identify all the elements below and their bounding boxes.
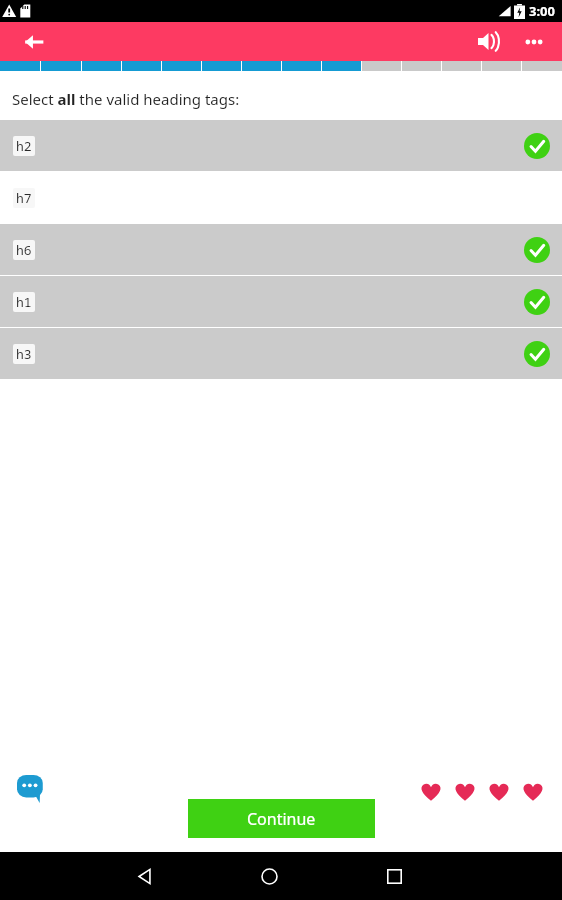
staticText: h3 bbox=[16, 345, 32, 363]
button[interactable]: Back bbox=[12, 22, 56, 61]
button[interactable]: Recent apps bbox=[363, 852, 425, 900]
staticText: Continue bbox=[247, 808, 316, 830]
button[interactable]: h2 bbox=[0, 120, 562, 171]
button[interactable]: h3 bbox=[0, 328, 562, 379]
button[interactable]: h1 bbox=[0, 276, 562, 327]
button[interactable]: Home bbox=[238, 852, 300, 900]
staticText: h1 bbox=[16, 293, 32, 311]
button[interactable]: Continue bbox=[188, 799, 375, 838]
staticText: h7 bbox=[16, 189, 32, 207]
staticText: 3:00 bbox=[529, 2, 555, 20]
staticText: Select all the valid heading tags: bbox=[12, 89, 240, 109]
button[interactable]: h6 bbox=[0, 224, 562, 275]
button[interactable]: h7 bbox=[0, 172, 562, 223]
button[interactable]: Discussion bbox=[14, 772, 48, 806]
button[interactable]: More options bbox=[514, 22, 554, 61]
staticText: h6 bbox=[16, 241, 32, 259]
button[interactable]: Sound bbox=[466, 22, 510, 61]
button[interactable]: Back bbox=[113, 852, 175, 900]
staticText: h2 bbox=[16, 137, 32, 155]
